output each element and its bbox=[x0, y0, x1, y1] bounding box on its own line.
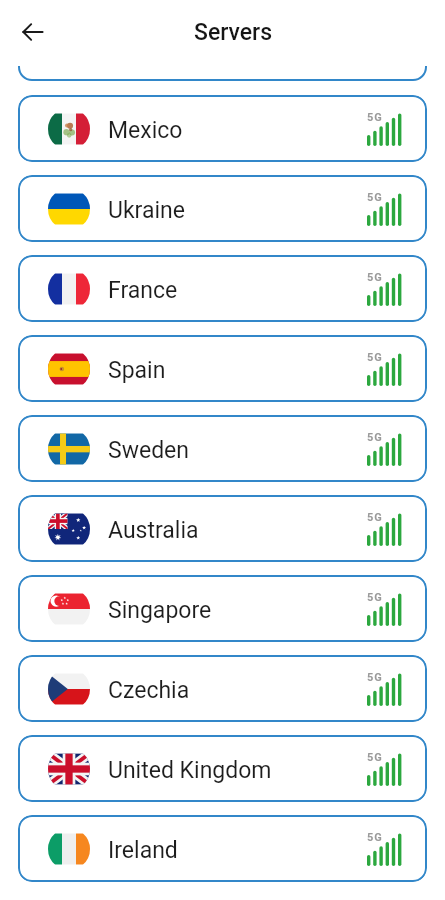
staticText: 5G bbox=[367, 671, 383, 684]
button[interactable]: Ukraine bbox=[18, 175, 427, 242]
staticText: 5G bbox=[367, 351, 383, 364]
button[interactable]: Sweden bbox=[18, 415, 427, 482]
button[interactable]: Australia bbox=[18, 495, 427, 562]
staticText: 5G bbox=[367, 191, 383, 204]
staticText: 5G bbox=[367, 831, 383, 844]
button[interactable]: France bbox=[18, 255, 427, 322]
staticText: 5G bbox=[367, 271, 383, 284]
staticText: 5G bbox=[367, 431, 383, 444]
staticText: 5G bbox=[367, 591, 383, 604]
staticText: Singapore bbox=[108, 597, 212, 624]
button[interactable]: Spain bbox=[18, 335, 427, 402]
staticText: United Kingdom bbox=[108, 757, 272, 784]
button[interactable]: Ireland bbox=[18, 815, 427, 882]
staticText: Ukraine bbox=[108, 197, 185, 224]
staticText: Mexico bbox=[108, 117, 183, 144]
staticText: 5G bbox=[367, 111, 383, 124]
staticText: France bbox=[108, 277, 178, 304]
staticText: Ireland bbox=[108, 837, 178, 864]
staticText: Australia bbox=[108, 517, 199, 544]
staticText: Servers bbox=[194, 19, 273, 46]
staticText: 5G bbox=[367, 751, 383, 764]
button[interactable]: Mexico bbox=[18, 95, 427, 162]
staticText: 5G bbox=[367, 511, 383, 524]
button[interactable]: Back bbox=[9, 11, 53, 55]
button[interactable]: Singapore bbox=[18, 575, 427, 642]
staticText: Spain bbox=[108, 357, 166, 384]
button[interactable]: Czechia bbox=[18, 655, 427, 722]
staticText: Czechia bbox=[108, 677, 190, 704]
button[interactable]: United Kingdom bbox=[18, 735, 427, 802]
staticText: Sweden bbox=[108, 437, 190, 464]
